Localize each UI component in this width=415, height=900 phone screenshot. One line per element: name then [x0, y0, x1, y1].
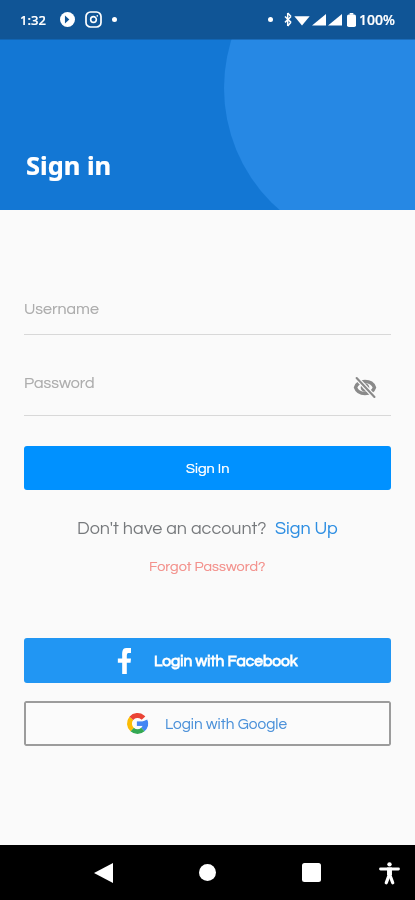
staticText: Forgot Password?: [149, 559, 266, 574]
button[interactable]: Sign Up: [275, 519, 338, 538]
staticText: 100%: [359, 10, 395, 29]
staticText: Login with Google: [165, 716, 288, 732]
staticText: Username: [24, 301, 99, 317]
button[interactable]: Login with Facebook: [24, 638, 391, 683]
button[interactable]: Accessibility menu: [363, 845, 415, 900]
staticText: Password: [24, 375, 95, 391]
staticText: Login with Facebook: [154, 653, 298, 669]
button[interactable]: Toggle password visibility: [350, 374, 380, 400]
button[interactable]: Login with Google: [24, 701, 391, 746]
staticText: Sign in: [26, 148, 112, 183]
button[interactable]: Recent apps: [259, 845, 363, 900]
button[interactable]: Back: [52, 845, 155, 900]
staticText: Sign In: [186, 461, 230, 476]
button[interactable]: Home: [155, 845, 259, 900]
staticText: Sign Up: [275, 519, 338, 538]
button[interactable]: Forgot Password?: [24, 559, 391, 574]
button[interactable]: Sign In: [24, 446, 391, 490]
staticText: 1:32: [20, 11, 46, 29]
staticText: Don't have an account?: [77, 519, 267, 538]
